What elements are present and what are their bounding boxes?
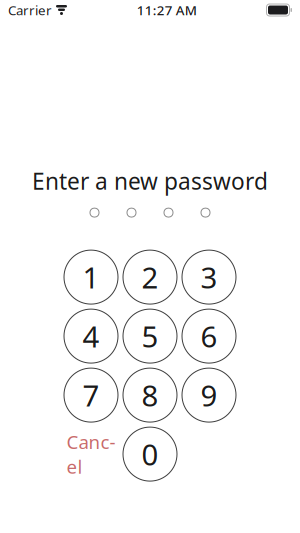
button[interactable]: 9 (182, 368, 236, 422)
staticText: 3 (200, 258, 217, 297)
button[interactable]: 1 (64, 250, 118, 304)
staticText: 11:27 AM (137, 1, 197, 19)
button[interactable]: 7 (64, 368, 118, 422)
staticText: 0 (141, 435, 158, 474)
button[interactable]: 0 (123, 427, 177, 481)
button[interactable]: 2 (123, 250, 177, 304)
button[interactable]: 4 (64, 309, 118, 363)
staticText: Carrier (8, 1, 52, 19)
staticText: Enter a new password (32, 166, 268, 196)
staticText: 1 (82, 258, 99, 297)
button[interactable]: 3 (182, 250, 236, 304)
staticText: 4 (82, 317, 99, 356)
staticText: 8 (141, 376, 158, 415)
button[interactable]: 5 (123, 309, 177, 363)
staticText: 6 (200, 317, 217, 356)
staticText: 9 (200, 376, 217, 415)
staticText: 5 (141, 317, 158, 356)
staticText: Cancel (66, 429, 115, 479)
button[interactable]: 6 (182, 309, 236, 363)
staticText: 7 (82, 376, 99, 415)
staticText: 2 (141, 258, 158, 297)
button[interactable]: Cancel (64, 427, 118, 481)
button[interactable]: 8 (123, 368, 177, 422)
